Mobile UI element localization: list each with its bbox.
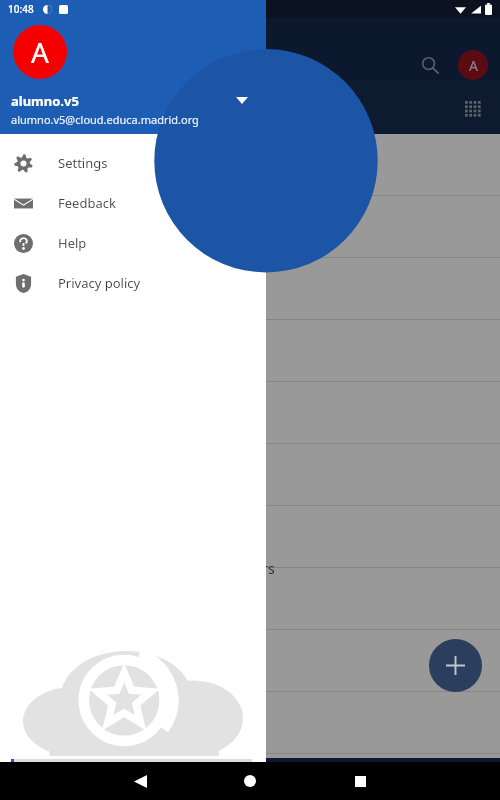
staticText: Feedback bbox=[58, 194, 116, 212]
button[interactable]: Add bbox=[429, 639, 482, 692]
staticText: alumno.v5 bbox=[11, 92, 79, 110]
staticText: 17.4 MB of 5 GB used (0.34 %) bbox=[11, 770, 165, 785]
button[interactable]: Privacy policy bbox=[0, 263, 266, 303]
button[interactable]: Switch to grid view bbox=[457, 93, 487, 123]
staticText: 10:48 bbox=[8, 2, 34, 16]
staticText: Privacy policy bbox=[58, 274, 141, 292]
staticText: alumno.v5@cloud.educa.madrid.org bbox=[11, 112, 199, 127]
staticText: A bbox=[469, 56, 478, 75]
button[interactable] bbox=[266, 18, 500, 762]
button[interactable]: Shared links bbox=[120, 758, 240, 800]
button[interactable]: Feedback bbox=[0, 183, 266, 223]
staticText: Help bbox=[58, 234, 87, 252]
button[interactable]: Profile picture bbox=[13, 25, 67, 79]
button[interactable]: Help bbox=[0, 223, 266, 263]
button[interactable]: Search bbox=[411, 46, 449, 84]
button[interactable]: Account bbox=[458, 50, 488, 80]
staticText: A bbox=[31, 33, 49, 71]
button[interactable]: Settings bbox=[0, 143, 266, 183]
button[interactable]: Switch account bbox=[229, 87, 255, 113]
staticText: No folders bbox=[206, 559, 275, 578]
staticText: Settings bbox=[58, 154, 108, 172]
button[interactable]: Activity bbox=[0, 758, 120, 800]
